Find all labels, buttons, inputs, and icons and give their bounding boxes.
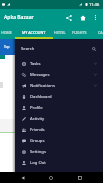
button[interactable]: Search: [15, 39, 103, 58]
button[interactable]: Dashboard: [15, 91, 103, 102]
staticText: Tasks: [30, 61, 41, 67]
staticText: CA: [98, 30, 103, 35]
button[interactable]: Settings: [15, 146, 103, 157]
staticText: HOTEL: [54, 30, 66, 35]
button[interactable]: Notifications: [15, 80, 103, 91]
staticText: Settings: [30, 149, 46, 155]
button[interactable]: HOME: [0, 26, 16, 39]
staticText: Profile: [30, 105, 43, 111]
button[interactable]: FLIGHTS: [67, 26, 92, 39]
staticText: Messages: [30, 72, 50, 78]
staticText: Groups: [30, 138, 45, 144]
staticText: Top: [4, 45, 10, 49]
button[interactable]: HOTEL: [53, 26, 67, 39]
button[interactable]: Tasks: [15, 58, 103, 69]
staticText: Apka Bazaar: [4, 14, 34, 21]
staticText: Log Out: [30, 160, 46, 166]
button[interactable]: Log Out: [15, 157, 103, 168]
button[interactable]: Share: [63, 12, 74, 23]
staticText: FLIGHTS: [72, 30, 87, 35]
staticText: 11:36: [89, 2, 100, 7]
staticText: Notifications: [30, 83, 55, 89]
staticText: MY ACCOUNT: [22, 30, 46, 35]
button[interactable]: MY ACCOUNT: [15, 26, 53, 39]
button[interactable]: Activity: [15, 113, 103, 124]
button[interactable]: Home: [46, 172, 56, 183]
button[interactable]: Home: [77, 12, 88, 23]
button[interactable]: More options: [90, 12, 101, 23]
button[interactable]: Profile: [15, 102, 103, 113]
button[interactable]: Back: [18, 172, 28, 183]
staticText: Activity: [30, 116, 45, 122]
staticText: Search: [21, 46, 35, 52]
staticText: Dashboard: [30, 94, 52, 100]
button[interactable]: Messages: [15, 69, 103, 80]
staticText: HOME: [1, 30, 12, 35]
button[interactable]: CA: [92, 26, 103, 39]
button[interactable]: Groups: [15, 135, 103, 146]
button[interactable]: Recent apps: [75, 172, 85, 183]
button[interactable]: Friends: [15, 124, 103, 135]
staticText: Friends: [30, 127, 45, 133]
